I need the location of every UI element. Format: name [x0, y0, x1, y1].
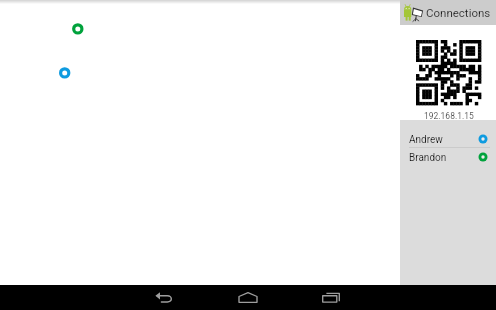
staticText: Andrew — [409, 134, 443, 146]
button[interactable]: Home — [206, 285, 290, 310]
staticText: Connections — [426, 6, 491, 19]
button[interactable]: Back — [122, 285, 206, 310]
button[interactable]: Andrew — [400, 127, 496, 147]
button[interactable]: Connections — [400, 0, 496, 25]
staticText: Brandon — [409, 152, 447, 164]
button[interactable]: 192.168.1.15 — [400, 25, 496, 120]
button[interactable]: Brandon — [400, 148, 496, 168]
staticText: 192.168.1.15 — [424, 111, 474, 120]
button[interactable]: Recent apps — [290, 285, 374, 310]
